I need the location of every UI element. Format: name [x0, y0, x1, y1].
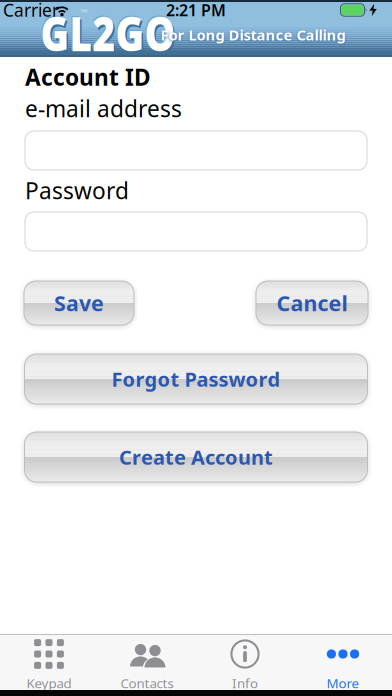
staticText: Info	[232, 674, 258, 692]
button[interactable]: Cancel	[256, 281, 368, 325]
staticText: Contacts	[120, 674, 173, 692]
button[interactable]: Info	[196, 634, 294, 690]
staticText: Carrier	[3, 0, 59, 21]
button[interactable]: Save	[24, 281, 134, 325]
staticText: Forgot Password	[111, 366, 280, 392]
staticText: More	[326, 674, 359, 692]
staticText: GL2GO	[39, 6, 174, 58]
staticText: 2:21 PM	[166, 0, 226, 21]
staticText: ™	[80, 6, 87, 19]
staticText: Password	[25, 175, 129, 205]
staticText: Account ID	[25, 62, 151, 92]
staticText: Save	[54, 289, 104, 317]
button[interactable]: Forgot Password	[24, 354, 367, 404]
button[interactable]: Create Account	[24, 432, 367, 482]
staticText: For Long Distance Calling	[160, 25, 345, 45]
staticText: e-mail address	[25, 93, 182, 123]
staticText: Create Account	[119, 444, 273, 470]
button[interactable]: Keypad	[0, 634, 98, 690]
staticText: GL2GO	[42, 9, 177, 60]
button[interactable]: More	[294, 634, 392, 690]
staticText: Cancel	[276, 289, 347, 317]
button[interactable]: Contacts	[98, 634, 196, 690]
staticText: Keypad	[26, 674, 71, 692]
staticText: GL2GO	[40, 7, 175, 59]
